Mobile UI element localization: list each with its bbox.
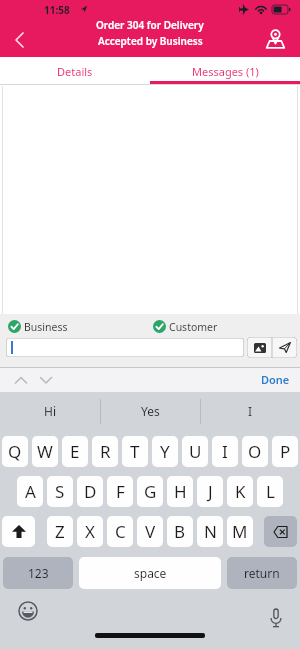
button[interactable]: A: [17, 476, 43, 507]
staticText: M: [232, 520, 248, 543]
button[interactable]: [272, 337, 297, 358]
button[interactable]: S: [47, 476, 73, 507]
button[interactable]: 123: [3, 557, 73, 589]
button[interactable]: Q: [2, 436, 28, 467]
staticText: N: [204, 520, 217, 543]
button[interactable]: T: [122, 436, 148, 467]
staticText: Hi: [44, 403, 56, 419]
staticText: L: [266, 480, 275, 503]
staticText: 123: [28, 565, 49, 581]
button[interactable]: Messages (1): [150, 57, 300, 86]
staticText: I: [248, 403, 253, 419]
staticText: J: [208, 480, 213, 503]
staticText: Y: [160, 440, 170, 463]
staticText: R: [100, 440, 111, 463]
button[interactable]: return: [227, 557, 297, 589]
button[interactable]: space: [79, 557, 221, 589]
staticText: A: [25, 480, 36, 503]
staticText: F: [116, 480, 125, 503]
staticText: W: [37, 440, 53, 463]
button[interactable]: W: [32, 436, 58, 467]
staticText: V: [145, 520, 156, 543]
staticText: return: [244, 565, 280, 581]
button[interactable]: Y: [152, 436, 178, 467]
staticText: H: [174, 480, 187, 503]
button[interactable]: G: [137, 476, 163, 507]
button[interactable]: M: [227, 516, 253, 547]
staticText: D: [84, 480, 97, 503]
staticText: G: [144, 480, 157, 503]
staticText: Business: [24, 320, 68, 334]
button[interactable]: H: [167, 476, 193, 507]
button[interactable]: N: [197, 516, 223, 547]
button[interactable]: [262, 604, 290, 632]
staticText: S: [55, 480, 65, 503]
staticText: Done: [261, 372, 290, 387]
button[interactable]: O: [242, 436, 268, 467]
button[interactable]: Yes: [100, 392, 200, 430]
button[interactable]: V: [137, 516, 163, 547]
staticText: space: [134, 565, 167, 581]
button[interactable]: Hi: [0, 392, 100, 430]
button[interactable]: [37, 372, 55, 388]
button[interactable]: U: [182, 436, 208, 467]
staticText: U: [189, 440, 202, 463]
staticText: Z: [55, 520, 65, 543]
button[interactable]: B: [167, 516, 193, 547]
button[interactable]: Z: [47, 516, 73, 547]
button[interactable]: [264, 516, 297, 547]
button[interactable]: L: [257, 476, 283, 507]
button[interactable]: [6, 338, 244, 357]
button[interactable]: R: [92, 436, 118, 467]
staticText: T: [130, 440, 140, 463]
staticText: Q: [8, 440, 22, 463]
button[interactable]: [247, 337, 272, 358]
staticText: O: [248, 440, 262, 463]
button[interactable]: F: [107, 476, 133, 507]
button[interactable]: Details: [0, 57, 150, 86]
button[interactable]: C: [107, 516, 133, 547]
button[interactable]: I: [200, 392, 300, 430]
button[interactable]: [2, 516, 35, 547]
button[interactable]: [5, 26, 33, 54]
button[interactable]: P: [272, 436, 298, 467]
staticText: Messages (1): [192, 64, 259, 79]
button[interactable]: D: [77, 476, 103, 507]
staticText: Customer: [169, 320, 218, 334]
staticText: 11:58: [44, 3, 70, 17]
staticText: Details: [57, 64, 93, 79]
staticText: P: [280, 440, 291, 463]
staticText: B: [174, 520, 186, 543]
button[interactable]: [12, 372, 30, 388]
button[interactable]: [259, 22, 291, 54]
staticText: Order 304 for Delivery: [96, 18, 204, 32]
staticText: I: [222, 440, 228, 463]
staticText: Yes: [141, 403, 160, 419]
button[interactable]: J: [197, 476, 223, 507]
button[interactable]: Done: [261, 372, 290, 387]
button[interactable]: K: [227, 476, 253, 507]
button[interactable]: X: [77, 516, 103, 547]
button[interactable]: E: [62, 436, 88, 467]
staticText: K: [235, 480, 246, 503]
staticText: E: [70, 440, 80, 463]
staticText: Accepted by Business: [98, 34, 203, 48]
button[interactable]: [13, 596, 42, 625]
button[interactable]: I: [212, 436, 238, 467]
staticText: X: [85, 520, 95, 543]
staticText: C: [115, 520, 126, 543]
